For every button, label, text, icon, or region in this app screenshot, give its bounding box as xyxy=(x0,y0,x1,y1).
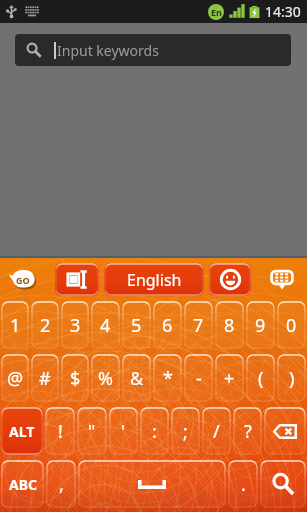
staticText: ALT xyxy=(9,422,35,441)
button[interactable]: Search xyxy=(260,460,306,508)
staticText: * xyxy=(163,366,173,391)
button[interactable]: Backspace xyxy=(264,407,306,455)
button[interactable]: # xyxy=(31,354,59,402)
staticText: ' xyxy=(121,419,126,444)
button[interactable]: 9 xyxy=(246,301,275,349)
staticText: + xyxy=(224,366,235,391)
staticText: GO xyxy=(16,274,30,286)
button[interactable]: 8 xyxy=(215,301,244,349)
button[interactable]: + xyxy=(215,354,244,402)
staticText: 14:30 xyxy=(265,2,301,21)
button[interactable]: : xyxy=(140,407,169,455)
button[interactable]: $ xyxy=(61,354,89,402)
staticText: 7 xyxy=(193,313,204,338)
button[interactable]: Emoji xyxy=(209,263,251,296)
staticText: , xyxy=(59,472,64,497)
staticText: # xyxy=(39,366,51,391)
staticText: 3 xyxy=(70,313,81,338)
staticText: ( xyxy=(258,366,264,391)
staticText: 2 xyxy=(40,313,51,338)
button[interactable]: ALT xyxy=(1,407,43,455)
button[interactable]: " xyxy=(77,407,107,455)
staticText: : xyxy=(152,419,157,444)
button[interactable]: @ xyxy=(1,354,29,402)
staticText: 1 xyxy=(10,313,21,338)
staticText: Input keywords xyxy=(57,41,159,60)
staticText: ? xyxy=(244,419,252,444)
staticText: 0 xyxy=(286,313,297,338)
button[interactable]: Input keywords xyxy=(15,34,291,66)
staticText: & xyxy=(130,366,144,391)
button[interactable]: 4 xyxy=(91,301,120,349)
staticText: @ xyxy=(7,366,24,391)
button[interactable]: - xyxy=(184,354,213,402)
button[interactable]: ) xyxy=(277,354,306,402)
button[interactable]: 6 xyxy=(153,301,182,349)
button[interactable]: % xyxy=(91,354,120,402)
staticText: ) xyxy=(289,366,295,391)
button[interactable]: 5 xyxy=(122,301,151,349)
button[interactable]: ! xyxy=(45,407,75,455)
button[interactable]: 1 xyxy=(1,301,29,349)
button[interactable]: Text editing xyxy=(55,263,99,296)
staticText: 5 xyxy=(131,313,142,338)
button[interactable]: / xyxy=(202,407,231,455)
staticText: % xyxy=(98,366,113,391)
button[interactable]: . xyxy=(228,460,258,508)
staticText: $ xyxy=(70,366,81,391)
staticText: ; xyxy=(183,419,188,444)
staticText: En xyxy=(211,6,222,18)
staticText: 9 xyxy=(255,313,266,338)
staticText: 6 xyxy=(162,313,173,338)
button[interactable]: 7 xyxy=(184,301,213,349)
staticText: " xyxy=(88,419,96,444)
staticText: 8 xyxy=(224,313,235,338)
button[interactable]: Hide keyboard xyxy=(257,258,307,300)
staticText: - xyxy=(196,366,202,391)
button[interactable]: 3 xyxy=(61,301,89,349)
button[interactable]: & xyxy=(122,354,151,402)
button[interactable]: 0 xyxy=(277,301,306,349)
staticText: . xyxy=(241,472,246,497)
staticText: / xyxy=(213,419,220,444)
button[interactable]: ( xyxy=(246,354,275,402)
button[interactable]: ' xyxy=(109,407,138,455)
button[interactable]: Space xyxy=(78,460,226,508)
staticText: 4 xyxy=(100,313,111,338)
button[interactable]: ? xyxy=(233,407,262,455)
button[interactable]: , xyxy=(46,460,76,508)
button[interactable]: GO Keyboard menu xyxy=(0,258,52,300)
staticText: English xyxy=(127,269,182,291)
button[interactable]: English xyxy=(104,263,204,296)
button[interactable]: * xyxy=(153,354,182,402)
button[interactable]: 2 xyxy=(31,301,59,349)
staticText: ABC xyxy=(9,475,37,494)
button[interactable]: ABC xyxy=(1,460,44,508)
staticText: ! xyxy=(58,419,63,444)
button[interactable]: ; xyxy=(171,407,200,455)
